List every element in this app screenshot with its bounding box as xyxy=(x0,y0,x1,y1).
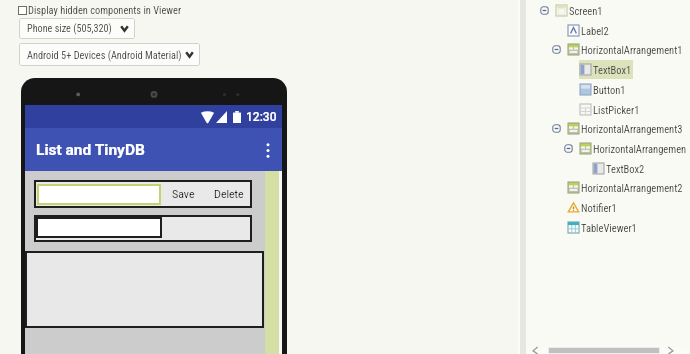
button[interactable]: More options xyxy=(254,136,282,164)
button[interactable]: Save xyxy=(161,180,206,208)
staticText: Phone size (505,320) xyxy=(27,23,112,35)
staticText: Display hidden components in Viewer xyxy=(28,4,182,16)
button[interactable]: Screen1 xyxy=(526,1,690,20)
button[interactable] xyxy=(37,184,161,205)
staticText: Screen1 xyxy=(569,5,603,17)
button[interactable]: Label2 xyxy=(526,21,690,40)
button[interactable]: HorizontalArrangement3 xyxy=(526,119,690,138)
staticText: TableViewer1 xyxy=(581,222,637,234)
button[interactable] xyxy=(36,217,162,238)
button[interactable]: HorizontalArrangement2 xyxy=(526,178,690,197)
button[interactable]: Notifier1 xyxy=(526,198,690,217)
staticText: Button1 xyxy=(593,84,626,96)
button[interactable]: Button1 xyxy=(526,80,690,99)
button[interactable]: Horizontal scrollbar xyxy=(526,347,690,354)
staticText: HorizontalArrangement1 xyxy=(581,44,683,56)
staticText: List and TinyDB xyxy=(36,141,145,159)
staticText: ListPicker1 xyxy=(593,104,640,116)
staticText: Delete xyxy=(214,188,244,200)
button[interactable]: HorizontalArrangemen xyxy=(526,139,690,158)
staticText: Label2 xyxy=(581,25,609,37)
button[interactable]: TextBox2 xyxy=(526,159,690,178)
button[interactable] xyxy=(25,251,264,328)
staticText: HorizontalArrangemen xyxy=(593,143,687,155)
staticText: HorizontalArrangement2 xyxy=(581,182,683,194)
button[interactable]: HorizontalArrangement1 xyxy=(526,40,690,59)
button[interactable]: Delete xyxy=(206,180,251,208)
button[interactable]: TableViewer1 xyxy=(526,218,690,237)
staticText: Save xyxy=(172,188,195,200)
button[interactable]: Android 5+ Devices (Android Material) xyxy=(19,43,200,66)
button[interactable]: ListPicker1 xyxy=(526,100,690,119)
button[interactable]: TextBox1 xyxy=(526,60,690,79)
staticText: Notifier1 xyxy=(581,202,617,214)
staticText: TextBox1 xyxy=(593,64,632,76)
staticText: 12:30 xyxy=(246,110,277,124)
staticText: HorizontalArrangement3 xyxy=(581,123,683,135)
staticText: Android 5+ Devices (Android Material) xyxy=(27,49,182,61)
button[interactable]: Phone size (505,320) xyxy=(19,18,135,39)
staticText: TextBox2 xyxy=(606,163,645,175)
button[interactable]: Display hidden components in Viewer xyxy=(18,4,182,16)
